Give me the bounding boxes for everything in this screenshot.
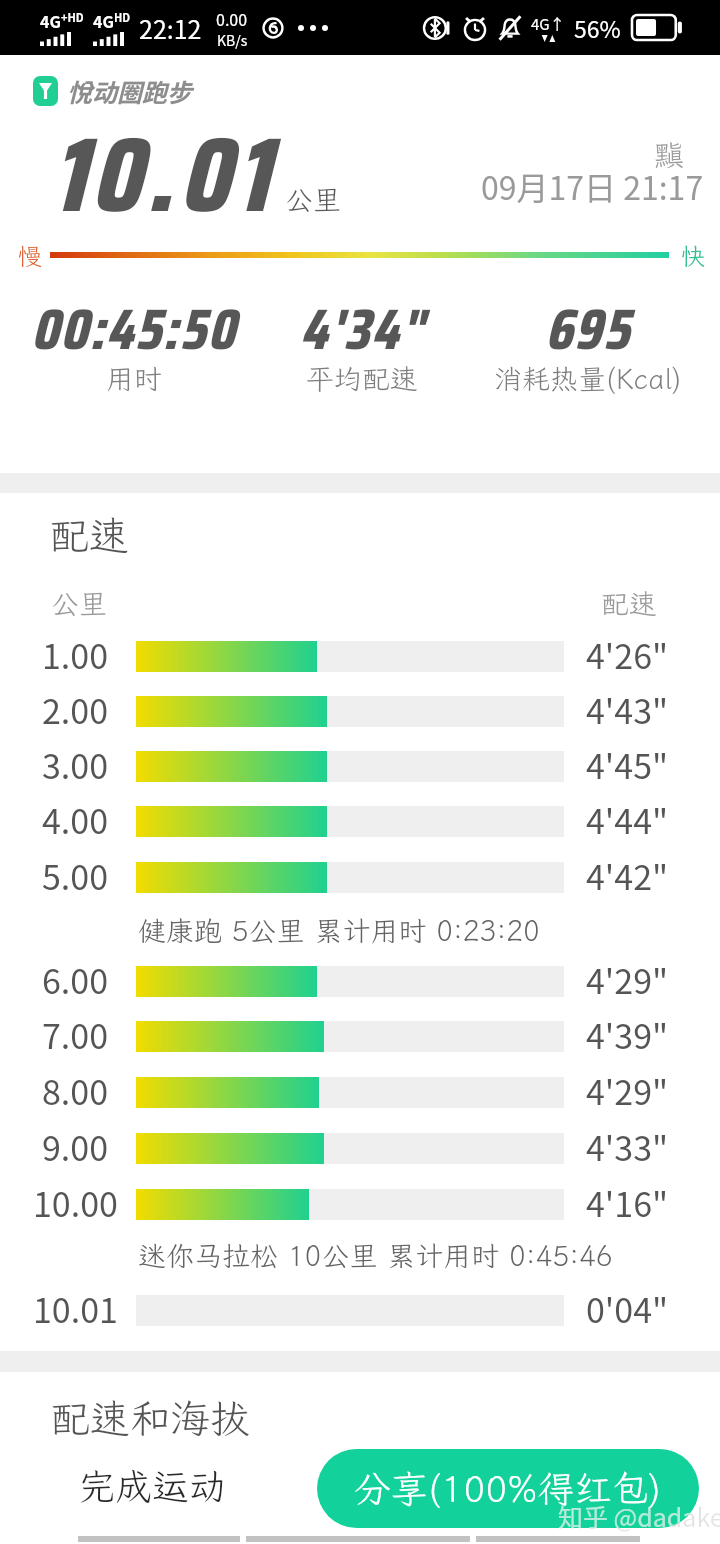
staticText: 5.00 bbox=[42, 851, 109, 900]
button[interactable]: 10.01 bbox=[0, 1283, 720, 1338]
staticText: 0'04" bbox=[586, 1284, 669, 1333]
button[interactable]: 4.00 bbox=[0, 794, 720, 849]
staticText: 4'45" bbox=[586, 740, 669, 789]
staticText: 配速 bbox=[49, 509, 129, 562]
staticText: 7.00 bbox=[42, 1010, 109, 1059]
staticText: 6.00 bbox=[42, 955, 109, 1004]
button[interactable]: 7.00 bbox=[0, 1009, 720, 1064]
staticText: 公里 bbox=[51, 585, 108, 622]
staticText: 56% bbox=[574, 11, 621, 44]
staticText: 配速 bbox=[601, 585, 658, 622]
staticText: 悅动圈跑步 bbox=[67, 73, 193, 109]
staticText: 09月17日 21:17 bbox=[481, 163, 704, 209]
staticText: 9.00 bbox=[42, 1122, 109, 1171]
staticText: 知乎 @dadake bbox=[558, 1498, 720, 1534]
staticText: 4'33" bbox=[586, 1122, 669, 1171]
staticText: 4'26" bbox=[586, 630, 669, 679]
staticText: 2.00 bbox=[42, 685, 109, 734]
staticText: 4'34" bbox=[300, 284, 425, 374]
button[interactable]: 分享(100%得红包) bbox=[317, 1449, 699, 1528]
staticText: 分享(100%得红包) bbox=[354, 1464, 662, 1513]
staticText: 快 bbox=[681, 240, 705, 272]
staticText: 10.01 bbox=[51, 92, 274, 257]
staticText: 8.00 bbox=[42, 1066, 109, 1115]
staticText: 1.00 bbox=[42, 630, 109, 679]
staticText: 4G bbox=[40, 9, 61, 32]
staticText: 4'39" bbox=[586, 1010, 669, 1059]
staticText: 4'16" bbox=[586, 1178, 669, 1227]
button[interactable]: 1.00 bbox=[0, 629, 720, 684]
staticText: 4'44" bbox=[586, 795, 669, 844]
staticText: 00:45:50 bbox=[31, 284, 237, 374]
button[interactable]: 2.00 bbox=[0, 684, 720, 739]
button[interactable]: 完成运动 bbox=[78, 1462, 226, 1511]
staticText: 0.00 bbox=[216, 7, 248, 30]
staticText: 4'29" bbox=[586, 955, 669, 1004]
staticText: 健康跑 5公里 累计用时 0:23:20 bbox=[138, 912, 540, 949]
staticText: 10.01 bbox=[33, 1284, 118, 1333]
staticText: 4G↑ bbox=[531, 13, 565, 35]
staticText: 4'29" bbox=[586, 1066, 669, 1115]
staticText: 消耗热量(Kcal) bbox=[494, 360, 682, 397]
button[interactable]: 6.00 bbox=[0, 954, 720, 1009]
staticText: 4'43" bbox=[586, 685, 669, 734]
staticText: 黰 bbox=[654, 135, 684, 175]
staticText: 10.00 bbox=[33, 1178, 118, 1227]
staticText: 公里 bbox=[285, 181, 342, 218]
button[interactable]: 3.00 bbox=[0, 739, 720, 794]
staticText: 平均配速 bbox=[306, 360, 419, 397]
button[interactable]: 10.00 bbox=[0, 1177, 720, 1232]
staticText: 慢 bbox=[18, 240, 42, 272]
staticText: 4G bbox=[93, 9, 114, 32]
button[interactable]: 8.00 bbox=[0, 1065, 720, 1120]
staticText: +HD bbox=[61, 9, 84, 25]
staticText: 知乎 @dadake bbox=[558, 1498, 699, 1528]
staticText: 4.00 bbox=[42, 795, 109, 844]
staticText: 迷你马拉松 10公里 累计用时 0:45:46 bbox=[138, 1237, 613, 1274]
staticText: 配速和海拔 bbox=[50, 1392, 250, 1445]
staticText: 用时 bbox=[106, 360, 163, 397]
staticText: 完成运动 bbox=[78, 1462, 226, 1511]
staticText: KB/s bbox=[217, 30, 248, 50]
button[interactable]: 5.00 bbox=[0, 850, 720, 905]
staticText: 3.00 bbox=[42, 740, 109, 789]
staticText: 695 bbox=[545, 284, 631, 374]
staticText: HD bbox=[114, 9, 131, 25]
button[interactable]: 9.00 bbox=[0, 1121, 720, 1176]
staticText: 4'42" bbox=[586, 851, 669, 900]
staticText: 22:12 bbox=[139, 10, 202, 46]
